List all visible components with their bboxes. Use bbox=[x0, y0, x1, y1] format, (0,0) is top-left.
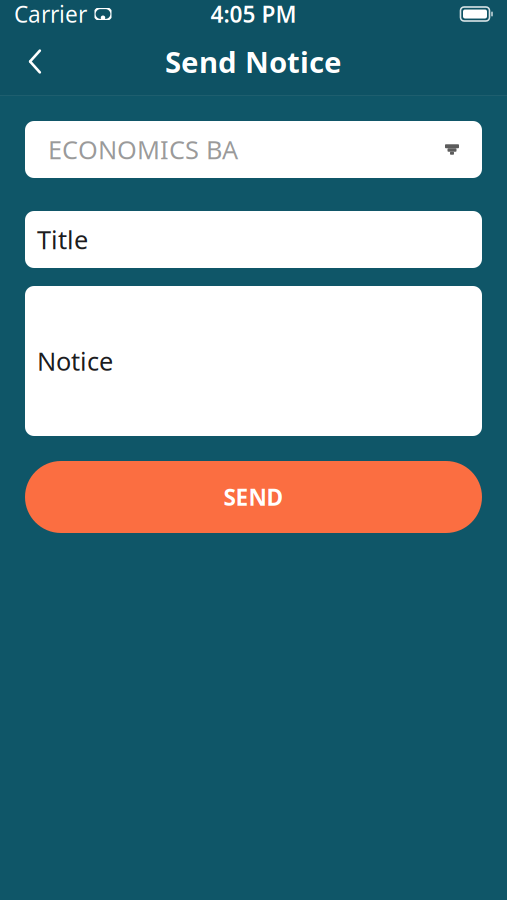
button[interactable]: SEND bbox=[25, 461, 482, 533]
button[interactable]: ECONOMICS BA bbox=[25, 121, 482, 178]
button[interactable]: Notice bbox=[25, 286, 482, 436]
button[interactable]: Title bbox=[25, 211, 482, 268]
button[interactable]: Back bbox=[12, 38, 58, 84]
staticText: Title bbox=[37, 223, 88, 256]
staticText: Notice bbox=[37, 344, 113, 378]
staticText: ECONOMICS BA bbox=[48, 133, 238, 166]
staticText: Send Notice bbox=[165, 42, 342, 81]
staticText: SEND bbox=[223, 482, 283, 512]
staticText: 4:05 PM bbox=[210, 0, 296, 29]
staticText: Carrier bbox=[14, 0, 87, 29]
